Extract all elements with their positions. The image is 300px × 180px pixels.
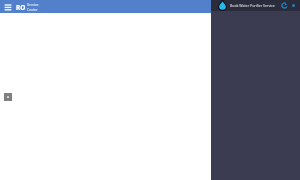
button[interactable]: Close chat panel [289,1,298,10]
staticText: Center [27,7,38,12]
staticText: Service [27,2,39,7]
button[interactable]: Open navigation menu [3,2,12,11]
staticText: RO [16,3,26,12]
staticText: Book Water Purifier Service [230,3,275,8]
button[interactable]: RO Service Center home [16,2,39,12]
button[interactable]: Refresh conversation [280,1,289,10]
